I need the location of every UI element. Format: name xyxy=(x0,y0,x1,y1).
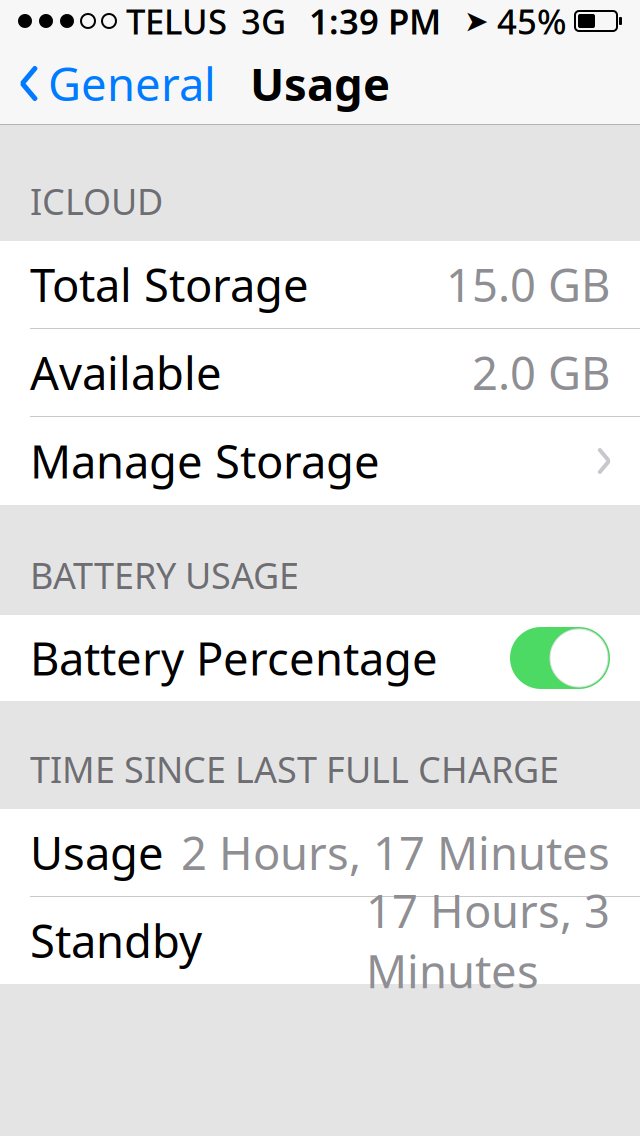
staticText: 3G xyxy=(241,0,286,44)
staticText: ➤ xyxy=(464,4,489,38)
staticText: General xyxy=(48,53,216,114)
button[interactable]: Manage Storage xyxy=(0,417,640,505)
staticText: 45% xyxy=(497,0,567,44)
staticText: Manage Storage xyxy=(30,431,380,491)
staticText: Battery Percentage xyxy=(30,628,438,688)
staticText: Available xyxy=(30,342,222,403)
staticText: ICLOUD xyxy=(30,177,163,225)
staticText: Total Storage xyxy=(30,254,309,315)
button[interactable]: Battery Percentage xyxy=(0,615,640,701)
staticText: Standby xyxy=(30,910,202,971)
staticText: 15.0 GB xyxy=(446,254,610,315)
staticText: 17 Hours, 3 Minutes xyxy=(366,880,610,1001)
button[interactable]: Standby xyxy=(0,897,640,984)
button[interactable]: Available xyxy=(0,329,640,416)
staticText: 1:39 PM xyxy=(309,0,441,44)
staticText: BATTERY USAGE xyxy=(30,551,299,599)
staticText: 2.0 GB xyxy=(472,342,610,403)
button[interactable]: General xyxy=(0,43,216,124)
staticText: 2 Hours, 17 Minutes xyxy=(181,822,610,883)
staticText: Usage xyxy=(250,53,390,114)
staticText: TELUS xyxy=(126,0,227,44)
staticText: TIME SINCE LAST FULL CHARGE xyxy=(30,745,559,793)
staticText: Usage xyxy=(30,822,164,883)
button[interactable]: Total Storage xyxy=(0,241,640,328)
button[interactable]: Usage xyxy=(0,809,640,896)
